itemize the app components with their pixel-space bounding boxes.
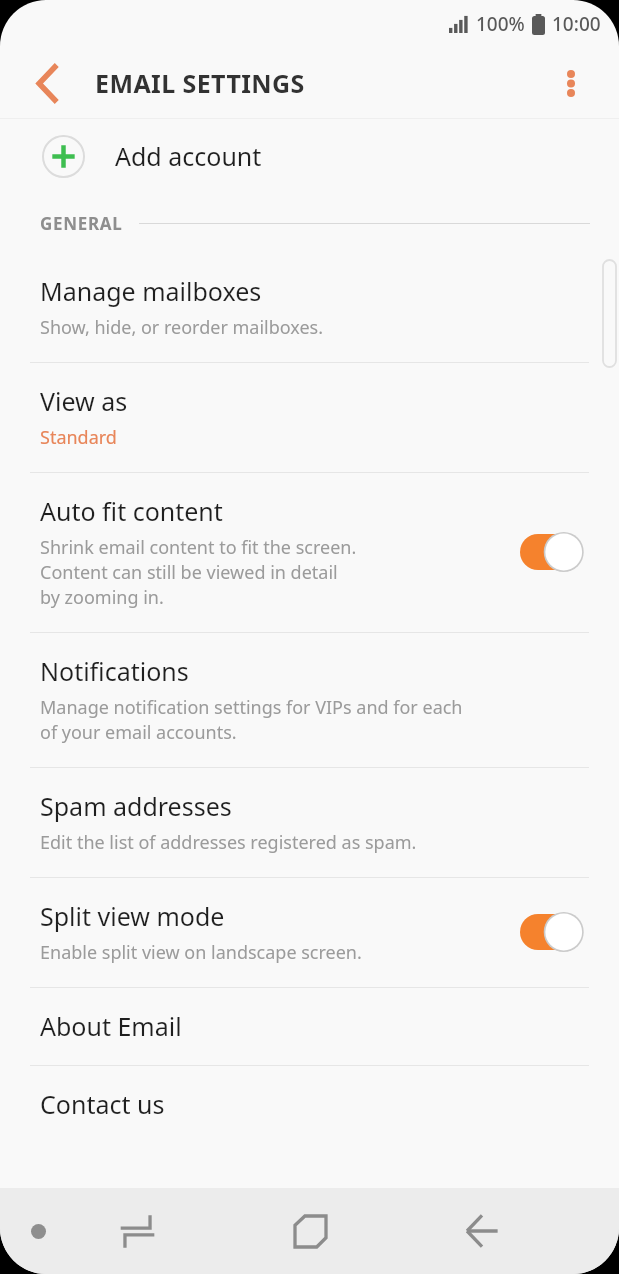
staticText: Manage mailboxes bbox=[40, 274, 262, 308]
staticText: Shrink email content to fit the screen. bbox=[40, 535, 357, 560]
button[interactable]: Back bbox=[449, 1198, 515, 1264]
staticText: Add account bbox=[115, 139, 262, 173]
staticText: View as bbox=[40, 384, 128, 418]
button[interactable]: Back bbox=[20, 56, 74, 110]
staticText: Notifications bbox=[40, 654, 189, 688]
staticText: Enable split view on landscape screen. bbox=[40, 940, 362, 965]
button[interactable]: Split view mode switch, on bbox=[517, 909, 589, 955]
button[interactable]: Contact us bbox=[0, 1066, 619, 1143]
staticText: Manage notification settings for VIPs an… bbox=[40, 695, 463, 720]
button[interactable]: Auto fit content bbox=[0, 473, 619, 632]
staticText: About Email bbox=[40, 1009, 182, 1043]
button[interactable]: Add account bbox=[0, 119, 619, 193]
button[interactable]: Notifications bbox=[0, 633, 619, 767]
button[interactable]: Home bbox=[275, 1196, 345, 1266]
staticText: GENERAL bbox=[40, 212, 123, 235]
staticText: Contact us bbox=[40, 1087, 165, 1121]
staticText: Spam addresses bbox=[40, 789, 232, 823]
staticText: EMAIL SETTINGS bbox=[95, 66, 305, 100]
button[interactable]: Manage mailboxes bbox=[0, 253, 619, 362]
staticText: 10:00 bbox=[552, 11, 601, 37]
staticText: of your email accounts. bbox=[40, 720, 237, 745]
staticText: Content can still be viewed in detail bbox=[40, 560, 338, 585]
button[interactable]: Recent apps bbox=[104, 1198, 170, 1264]
button[interactable]: View as bbox=[0, 363, 619, 472]
staticText: Show, hide, or reorder mailboxes. bbox=[40, 315, 324, 340]
staticText: Edit the list of addresses registered as… bbox=[40, 830, 417, 855]
button[interactable]: Auto fit content switch, on bbox=[517, 529, 589, 575]
button[interactable]: More options bbox=[545, 57, 597, 109]
button[interactable]: Spam addresses bbox=[0, 768, 619, 877]
staticText: 100% bbox=[476, 11, 525, 37]
button[interactable]: Split view mode bbox=[0, 878, 619, 987]
staticText: Split view mode bbox=[40, 899, 225, 933]
staticText: Standard bbox=[40, 425, 117, 450]
button[interactable]: About Email bbox=[0, 988, 619, 1065]
staticText: by zooming in. bbox=[40, 585, 164, 610]
staticText: Auto fit content bbox=[40, 494, 223, 528]
